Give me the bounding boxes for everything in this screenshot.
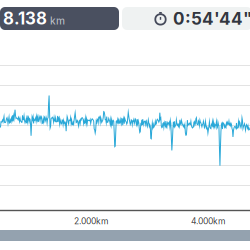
staticText: 4.000km: [191, 216, 225, 226]
staticText: 2.000km: [74, 216, 108, 226]
staticText: 0:54'44": [173, 8, 250, 29]
staticText: km: [50, 15, 65, 27]
button[interactable]: 0:54'44": [122, 7, 250, 30]
staticText: 8.138: [3, 8, 47, 29]
button[interactable]: 8.138: [0, 7, 119, 30]
